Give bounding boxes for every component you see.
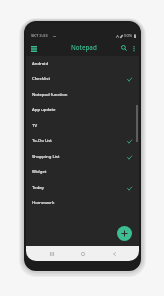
button[interactable]: Widget (26, 163, 139, 179)
button[interactable]: Homework (26, 194, 139, 210)
staticText: SKT 3:33 (31, 33, 48, 39)
staticText: To-Do List (32, 137, 52, 143)
staticText: Android (32, 60, 49, 66)
staticText: TV (32, 122, 37, 128)
button[interactable]: Open navigation menu (29, 44, 39, 54)
button[interactable]: Notepad function (26, 86, 139, 102)
staticText: 50% (124, 33, 133, 39)
staticText: Notepad function (32, 91, 68, 97)
button[interactable]: App update (26, 101, 139, 117)
staticText: Homework (32, 199, 55, 205)
staticText: Notepad (71, 43, 97, 51)
button[interactable]: TV (26, 117, 139, 133)
button[interactable]: Back (109, 249, 119, 259)
button[interactable]: Search (119, 43, 129, 53)
button[interactable]: Android (26, 55, 139, 71)
staticText: Shopping List (32, 153, 60, 159)
button[interactable]: To-Do List (26, 132, 139, 148)
button[interactable]: Today (26, 179, 139, 195)
staticText: Widget (32, 168, 47, 174)
button[interactable]: Checklist (26, 70, 139, 86)
button[interactable]: Recents (47, 249, 57, 259)
button[interactable]: More options (129, 44, 138, 53)
button[interactable]: Add note (117, 226, 132, 241)
button[interactable]: Shopping List (26, 148, 139, 164)
staticText: Checklist (32, 75, 50, 81)
staticText: App update (32, 106, 56, 112)
button[interactable]: Home (78, 249, 88, 259)
staticText: Today (32, 184, 44, 190)
